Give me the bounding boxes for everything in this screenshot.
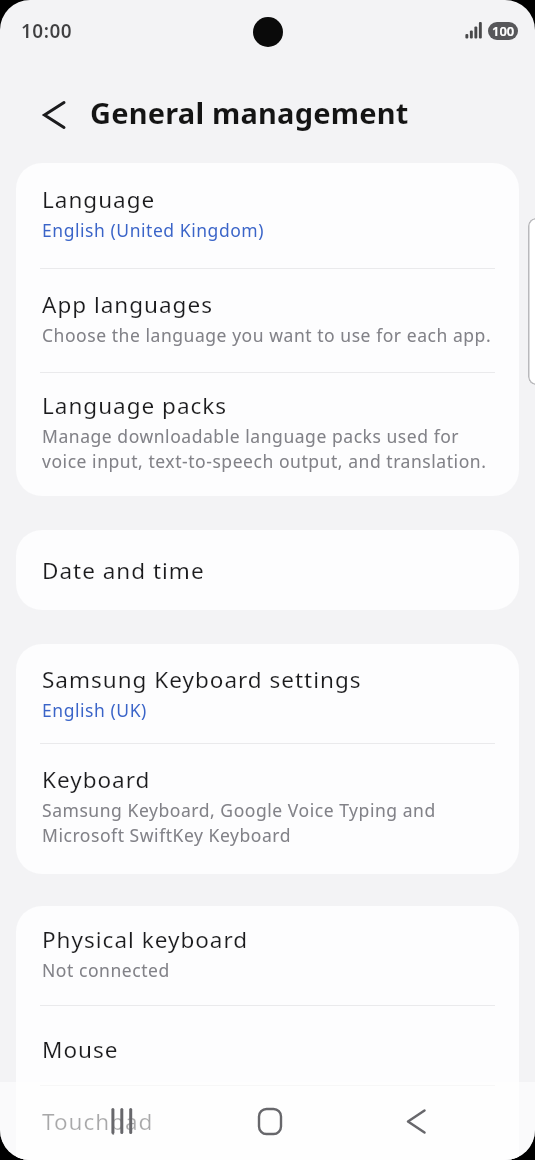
- staticText: App languages: [42, 289, 213, 320]
- button[interactable]: Physical keyboard: [16, 906, 519, 1005]
- button[interactable]: General management: [0, 79, 535, 145]
- staticText: English (UK): [42, 698, 147, 722]
- button[interactable]: Date and time: [16, 530, 519, 610]
- staticText: Date and time: [42, 555, 205, 586]
- button[interactable]: Keyboard: [16, 744, 519, 874]
- button[interactable]: Samsung Keyboard settings: [16, 644, 519, 743]
- button[interactable]: [100, 1099, 144, 1143]
- button[interactable]: [248, 1099, 292, 1143]
- staticText: Touchpad: [42, 1106, 154, 1137]
- staticText: Choose the language you want to use for …: [42, 323, 492, 347]
- staticText: Not connected: [42, 958, 170, 982]
- button[interactable]: App languages: [16, 269, 519, 372]
- staticText: General management: [90, 93, 409, 132]
- staticText: Language: [42, 184, 156, 215]
- staticText: Physical keyboard: [42, 924, 249, 955]
- staticText: 10:00: [21, 18, 73, 44]
- button[interactable]: Language packs: [16, 373, 519, 496]
- staticText: 100: [492, 22, 515, 40]
- staticText: English (United Kingdom): [42, 218, 265, 242]
- staticText: Samsung Keyboard settings: [42, 664, 362, 695]
- staticText: Manage downloadable language packs used …: [42, 424, 487, 473]
- button[interactable]: Mouse: [16, 1006, 519, 1085]
- staticText: Keyboard: [42, 764, 151, 795]
- staticText: Samsung Keyboard, Google Voice Typing an…: [42, 798, 436, 847]
- button[interactable]: [395, 1099, 439, 1143]
- staticText: Language packs: [42, 390, 228, 421]
- button[interactable]: Touchpad: [16, 1086, 519, 1137]
- button[interactable]: Language: [16, 163, 519, 268]
- staticText: Mouse: [42, 1034, 119, 1065]
